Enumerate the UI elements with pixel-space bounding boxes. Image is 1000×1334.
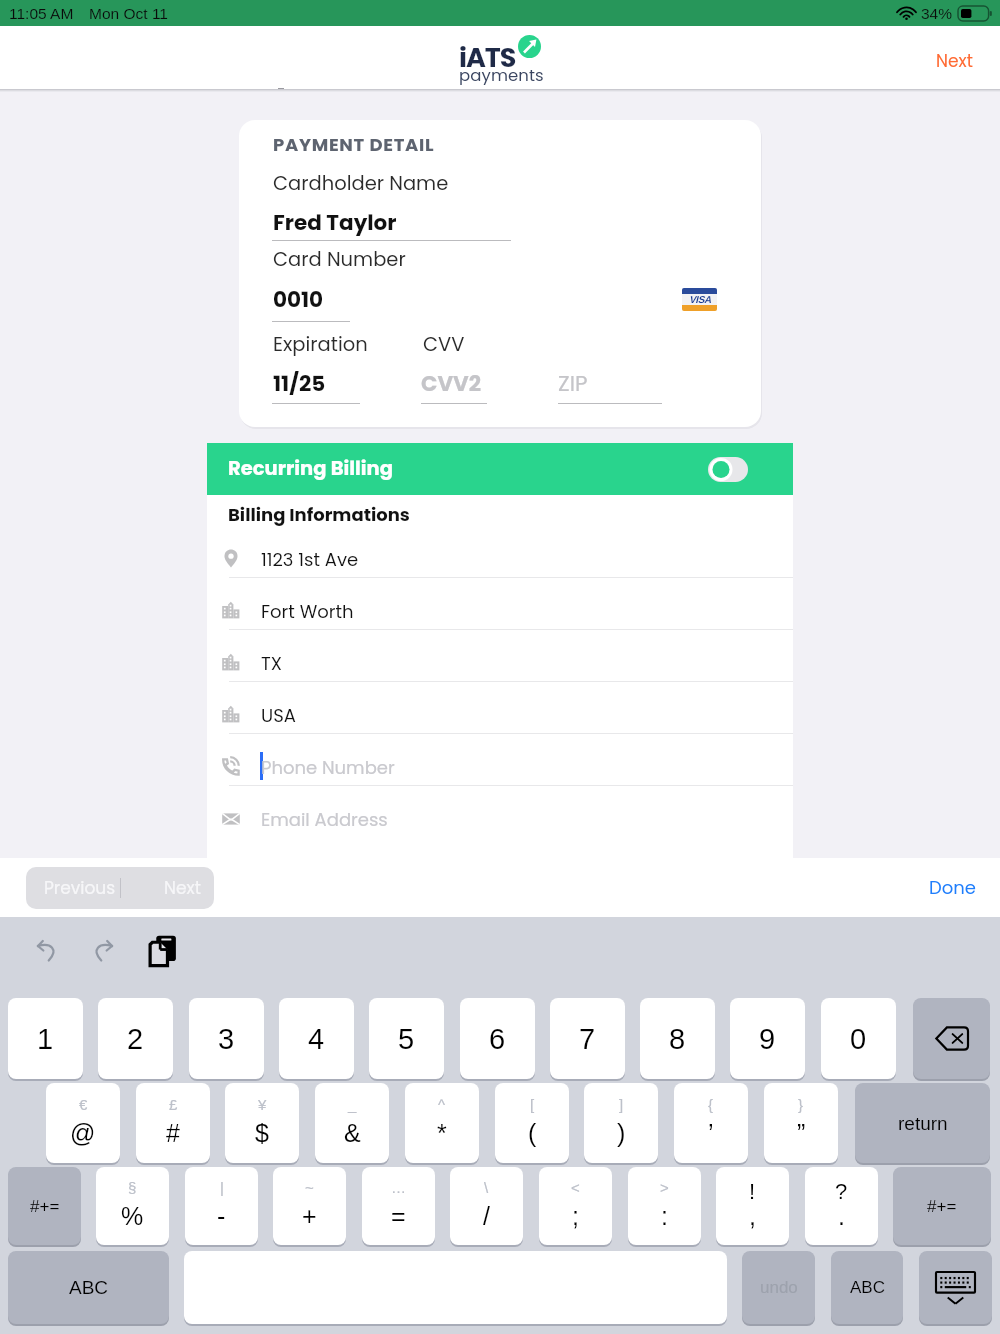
button[interactable]: 8 <box>640 998 715 1079</box>
button[interactable]: Undo <box>21 926 69 974</box>
staticText: payments <box>459 64 544 87</box>
button[interactable]: 2 <box>98 998 173 1079</box>
button[interactable]: TX <box>207 630 793 682</box>
button[interactable]: #+= <box>8 1167 81 1245</box>
staticText: } <box>798 1096 804 1113</box>
button[interactable]: Recurring billing toggle <box>708 457 748 482</box>
staticText: ZIP <box>558 368 588 398</box>
button[interactable]: 5 <box>369 998 444 1079</box>
button[interactable]: < <box>539 1167 612 1245</box>
button[interactable]: 7 <box>550 998 625 1079</box>
staticText: 0 <box>850 1023 867 1055</box>
staticText: ] <box>619 1096 624 1113</box>
button[interactable]: } <box>764 1083 838 1163</box>
button[interactable]: ? <box>805 1167 878 1245</box>
staticText: Fort Worth <box>261 599 354 624</box>
staticText: ^ <box>438 1096 446 1113</box>
button[interactable]: ] <box>584 1083 658 1163</box>
staticText: Previous <box>44 876 116 900</box>
staticText: | <box>220 1179 224 1196</box>
staticText: 3 <box>218 1023 235 1055</box>
staticText: , <box>749 1202 756 1230</box>
staticText: Recurring Billing <box>228 455 393 482</box>
button[interactable]: 3 <box>189 998 264 1079</box>
staticText: ’ <box>708 1119 714 1147</box>
staticText: 1 <box>37 1023 54 1055</box>
button[interactable]: \ <box>450 1167 523 1245</box>
staticText: Expiration <box>273 331 368 358</box>
staticText: USA <box>261 703 296 728</box>
button[interactable]: Paste <box>139 926 187 974</box>
button[interactable]: ! <box>716 1167 789 1245</box>
button[interactable]: Next <box>146 867 214 909</box>
button[interactable]: [ <box>495 1083 569 1163</box>
staticText: [ <box>530 1096 535 1113</box>
button[interactable]: § <box>96 1167 169 1245</box>
button[interactable]: return <box>855 1083 990 1163</box>
staticText: #+= <box>30 1197 60 1216</box>
button[interactable]: USA <box>207 682 793 734</box>
button[interactable]: 0 <box>821 998 896 1079</box>
staticText: Billing Informations <box>228 502 410 527</box>
staticText: § <box>128 1179 137 1196</box>
staticText: \ <box>484 1179 489 1196</box>
staticText: ( <box>528 1119 537 1147</box>
staticText: CVV2 <box>421 368 482 398</box>
button[interactable]: undo <box>742 1251 815 1324</box>
staticText: 7 <box>579 1023 596 1055</box>
staticText: ABC <box>850 1278 885 1297</box>
button[interactable]: Email Address <box>207 786 793 838</box>
staticText: 9 <box>759 1023 776 1055</box>
staticText: #+= <box>927 1197 957 1216</box>
button[interactable]: 6 <box>460 998 535 1079</box>
staticText: > <box>660 1179 669 1196</box>
staticText: 8 <box>669 1023 686 1055</box>
button[interactable]: ^ <box>405 1083 479 1163</box>
button[interactable]: 4 <box>279 998 354 1079</box>
staticText: . <box>838 1202 845 1230</box>
staticText: Phone Number <box>261 755 395 780</box>
button[interactable]: £ <box>136 1083 210 1163</box>
button[interactable]: Next <box>920 39 989 83</box>
button[interactable]: € <box>46 1083 120 1163</box>
staticText: CVV <box>423 331 465 358</box>
button[interactable]: Phone Number <box>207 734 793 786</box>
button[interactable]: Backspace <box>913 998 990 1079</box>
staticText: 0010 <box>273 284 324 314</box>
staticText: 6 <box>489 1023 506 1055</box>
staticText: : <box>661 1202 668 1230</box>
staticText: $ <box>255 1119 269 1147</box>
button[interactable]: > <box>628 1167 701 1245</box>
button[interactable]: { <box>674 1083 748 1163</box>
button[interactable]: #+= <box>893 1167 991 1245</box>
staticText: 34% <box>921 5 953 22</box>
staticText: ” <box>797 1119 806 1147</box>
staticText: + <box>302 1202 317 1230</box>
button[interactable]: Done <box>929 875 976 900</box>
staticText: { <box>708 1096 714 1113</box>
staticText: Next <box>164 876 201 900</box>
staticText: ; <box>572 1202 579 1230</box>
button[interactable]: | <box>185 1167 258 1245</box>
button[interactable]: 1 <box>8 998 83 1079</box>
button[interactable]: ¥ <box>225 1083 299 1163</box>
button[interactable]: … <box>362 1167 435 1245</box>
staticText: return <box>898 1113 948 1134</box>
staticText: - <box>217 1202 226 1230</box>
staticText: iATS <box>459 39 516 77</box>
staticText: 1123 1st Ave <box>261 547 359 572</box>
staticText: Fred Taylor <box>273 207 397 237</box>
button[interactable]: ABC <box>8 1251 169 1324</box>
button[interactable]: Hide keyboard <box>919 1251 992 1324</box>
staticText: = <box>391 1202 406 1230</box>
button[interactable]: 9 <box>730 998 805 1079</box>
button[interactable]: Fort Worth <box>207 578 793 630</box>
staticText: * <box>437 1119 447 1147</box>
button[interactable]: _ <box>315 1083 389 1163</box>
button[interactable]: ~ <box>273 1167 346 1245</box>
button[interactable]: Redo <box>80 926 128 974</box>
button[interactable]: Previous <box>26 867 146 909</box>
button[interactable]: 1123 1st Ave <box>207 526 793 578</box>
button[interactable]: ABC <box>831 1251 903 1324</box>
